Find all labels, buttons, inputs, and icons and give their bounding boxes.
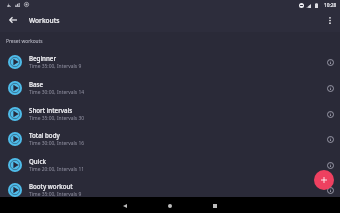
button[interactable]: Info bbox=[323, 183, 337, 197]
button[interactable]: Start workout bbox=[0, 49, 340, 75]
button[interactable]: Start workout bbox=[0, 177, 340, 203]
button[interactable]: Info bbox=[323, 81, 337, 95]
button[interactable]: Start workout bbox=[8, 132, 22, 146]
button[interactable]: Start workout bbox=[8, 183, 22, 197]
staticText: Short intervals bbox=[29, 106, 73, 114]
button[interactable]: Info bbox=[323, 158, 337, 172]
button[interactable]: Start workout bbox=[8, 55, 22, 69]
button[interactable]: Start workout bbox=[0, 152, 340, 178]
staticText: Time 35:00, Intervals 9 bbox=[29, 63, 82, 70]
staticText: Time 30:00, Intervals 14 bbox=[29, 89, 85, 96]
button[interactable]: Info bbox=[323, 132, 337, 146]
staticText: Quick bbox=[29, 157, 46, 165]
button[interactable]: Home bbox=[162, 198, 178, 213]
button[interactable]: Start workout bbox=[8, 107, 22, 121]
staticText: Time 30:00, Intervals 16 bbox=[29, 140, 85, 147]
button[interactable]: Start workout bbox=[8, 81, 22, 95]
button[interactable]: Start workout bbox=[0, 101, 340, 127]
button[interactable]: Start workout bbox=[0, 126, 340, 152]
staticText: Time 35:00, Intervals 9 bbox=[29, 191, 82, 198]
staticText: Total body bbox=[29, 131, 60, 139]
button[interactable]: Info bbox=[323, 107, 337, 121]
staticText: Beginner bbox=[29, 54, 57, 62]
button[interactable]: Recents bbox=[207, 198, 223, 213]
staticText: Time 20:00, Intervals 11 bbox=[29, 166, 85, 173]
staticText: Booty workout bbox=[29, 182, 73, 190]
button[interactable]: Start workout bbox=[0, 75, 340, 101]
staticText: Base bbox=[29, 80, 44, 88]
staticText: Time 35:00, Intervals 30 bbox=[29, 115, 85, 122]
staticText: 10:28 bbox=[324, 2, 337, 9]
button[interactable]: Add workout bbox=[314, 170, 334, 190]
staticText: Preset workouts bbox=[6, 38, 43, 45]
staticText: Workouts bbox=[29, 16, 60, 25]
button[interactable]: More options bbox=[322, 12, 338, 28]
button[interactable]: Back bbox=[117, 198, 133, 213]
button[interactable]: Info bbox=[323, 55, 337, 69]
button[interactable]: Start workout bbox=[8, 158, 22, 172]
button[interactable]: Back bbox=[5, 12, 21, 28]
